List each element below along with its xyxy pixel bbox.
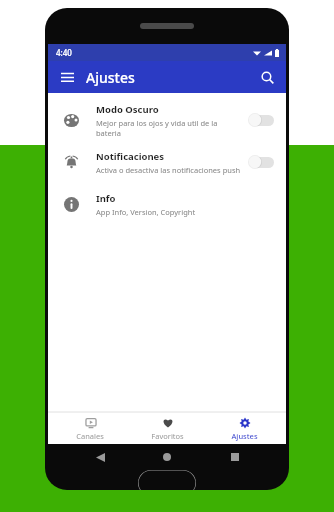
staticText: Mejor para los ojos y vida util de la ba… bbox=[96, 118, 242, 138]
staticText: Activa o desactiva las notificaciones pu… bbox=[96, 165, 241, 175]
staticText: Canales bbox=[76, 431, 104, 441]
staticText: Ajustes bbox=[231, 431, 258, 441]
button[interactable]: Toggle Modo Oscuro bbox=[248, 113, 274, 127]
button[interactable]: Info bbox=[48, 183, 286, 225]
button[interactable]: Home bbox=[154, 444, 180, 470]
button[interactable]: Back bbox=[87, 444, 113, 470]
button[interactable]: Home button bbox=[138, 470, 196, 490]
button[interactable]: Notificaciones bbox=[48, 141, 286, 183]
button[interactable]: Modo Oscuro bbox=[48, 99, 286, 141]
staticText: Ajustes bbox=[86, 68, 135, 87]
button[interactable]: Favoritos bbox=[132, 412, 202, 444]
button[interactable]: Ajustes bbox=[209, 412, 279, 444]
staticText: Favoritos bbox=[151, 431, 184, 441]
button[interactable]: Canales bbox=[55, 412, 125, 444]
staticText: Info bbox=[96, 192, 116, 205]
button[interactable]: Recents bbox=[222, 444, 248, 470]
staticText: Notificaciones bbox=[96, 150, 165, 163]
staticText: Modo Oscuro bbox=[96, 103, 159, 116]
button[interactable]: Menu bbox=[56, 66, 78, 88]
button[interactable]: Toggle Notificaciones bbox=[248, 155, 274, 169]
staticText: 4:40 bbox=[56, 47, 72, 58]
staticText: App Info, Version, Copyright bbox=[96, 207, 196, 217]
button[interactable]: Search bbox=[256, 66, 278, 88]
